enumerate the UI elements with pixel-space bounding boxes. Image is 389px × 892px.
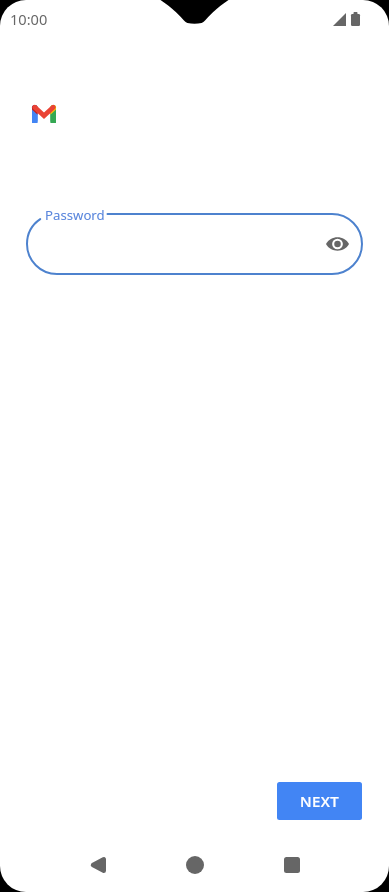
button[interactable]: Show password [322,229,352,259]
staticText: NEXT [300,791,340,811]
button[interactable]: Password [26,213,363,275]
button[interactable]: Home [171,841,219,889]
staticText: 10:00 [10,9,48,29]
button[interactable]: Recents [268,841,316,889]
staticText: Password [45,206,105,224]
button[interactable]: NEXT [277,782,362,820]
button[interactable]: Back [73,841,121,889]
